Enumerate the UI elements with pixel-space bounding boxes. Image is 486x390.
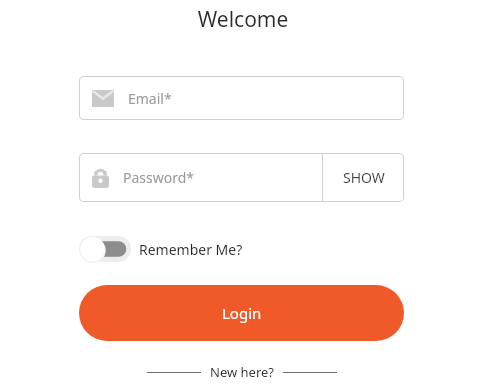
staticText: Remember Me? [139, 240, 243, 259]
other: Email [92, 90, 114, 107]
button[interactable]: Remember Me toggle [79, 236, 243, 262]
other: Remember Me toggle [79, 236, 131, 262]
button[interactable]: Login [79, 285, 404, 341]
staticText: Password* [123, 168, 195, 187]
button[interactable]: SHOW [323, 153, 404, 202]
other: Password [92, 167, 109, 188]
staticText: Login [222, 303, 262, 323]
button[interactable]: New here? [210, 363, 274, 381]
button[interactable]: Email [79, 76, 404, 120]
staticText: SHOW [343, 168, 385, 187]
button[interactable]: Password [79, 153, 322, 202]
staticText: Email* [128, 89, 172, 108]
staticText: Welcome [0, 5, 486, 34]
